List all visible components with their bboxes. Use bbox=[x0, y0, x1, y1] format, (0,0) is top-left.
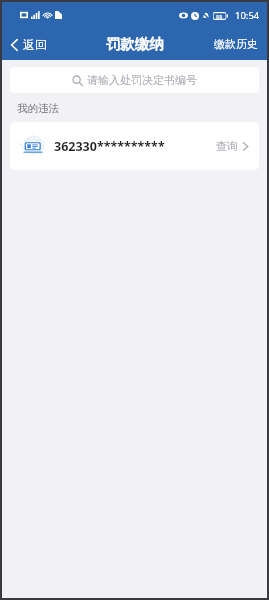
button[interactable]: Back bbox=[2, 33, 55, 56]
other: ID card bbox=[20, 134, 46, 158]
button[interactable]: ID card bbox=[10, 122, 259, 170]
staticText: 88 bbox=[216, 13, 223, 20]
staticText: 查询 bbox=[216, 139, 238, 153]
staticText: 我的违法 bbox=[17, 102, 59, 115]
staticText: 罚款缴纳 bbox=[106, 35, 164, 53]
staticText: 返回 bbox=[23, 37, 47, 52]
other: Back bbox=[10, 38, 19, 52]
button[interactable]: 请输入处罚决定书编号 bbox=[10, 67, 259, 93]
button[interactable]: 缴款历史 bbox=[205, 32, 267, 56]
staticText: 10:54 bbox=[235, 9, 260, 22]
staticText: 请输入处罚决定书编号 bbox=[87, 73, 197, 87]
staticText: 362330********** bbox=[54, 138, 216, 155]
staticText: 缴款历史 bbox=[214, 37, 258, 51]
